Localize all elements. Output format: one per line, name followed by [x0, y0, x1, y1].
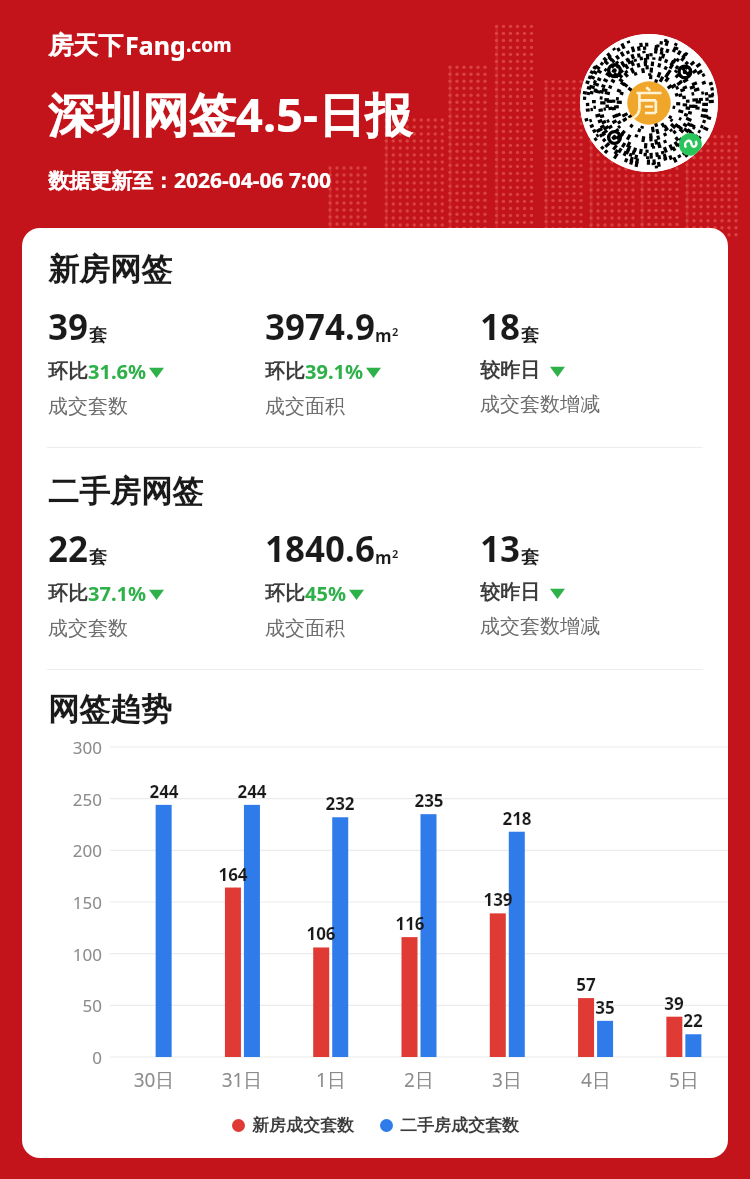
button[interactable]: 新房成交套数 [232, 1115, 354, 1136]
staticText: 2 [392, 324, 399, 339]
staticText: 39.1% [305, 358, 363, 385]
staticText: 35 [583, 996, 627, 1019]
staticText: 235 [407, 789, 451, 812]
staticText: 较昨日 [480, 358, 540, 383]
staticText: m [375, 324, 392, 347]
staticText: 套 [89, 324, 107, 347]
staticText: 较昨日 [480, 580, 540, 605]
staticText: 套 [89, 546, 107, 569]
staticText: 30日 [122, 1067, 186, 1093]
button[interactable]: 13 [480, 525, 600, 639]
staticText: 18 [480, 303, 521, 351]
staticText: 232 [318, 792, 362, 815]
button[interactable]: 3974.9 [265, 303, 399, 419]
staticText: 31日 [210, 1067, 274, 1093]
staticText: 房天下 [48, 30, 123, 61]
staticText: Fang [125, 28, 186, 62]
staticText: .com [186, 32, 232, 58]
staticText: 新房网签 [48, 250, 172, 289]
button[interactable]: 1840.6 [265, 525, 399, 641]
staticText: 45% [305, 580, 346, 607]
staticText: 1840.6 [265, 525, 375, 573]
staticText: 5日 [652, 1067, 716, 1093]
staticText: 套 [521, 324, 539, 347]
staticText: 100 [58, 943, 102, 966]
staticText: 31.6% [88, 358, 146, 385]
staticText: 数据更新至：2026-04-06 7:00 [48, 166, 331, 195]
staticText: 150 [58, 891, 102, 914]
staticText: 13 [480, 525, 521, 573]
staticText: 成交套数 [48, 394, 128, 419]
staticText: 新房成交套数 [252, 1115, 354, 1136]
staticText: 3日 [475, 1067, 539, 1093]
button[interactable]: 22 [48, 525, 164, 641]
staticText: 3974.9 [265, 303, 375, 351]
button[interactable]: 二手房网签 [48, 472, 203, 511]
staticText: 环比 [48, 581, 88, 606]
staticText: 218 [495, 807, 539, 830]
staticText: 成交套数增减 [480, 614, 600, 639]
button[interactable]: 39 [48, 303, 164, 419]
staticText: 成交面积 [265, 394, 345, 419]
staticText: 深圳网签4.5-日报 [48, 82, 413, 146]
staticText: 二手房成交套数 [400, 1115, 519, 1136]
staticText: 2 [392, 546, 399, 561]
staticText: 22 [48, 525, 89, 573]
button[interactable]: 网签趋势 [48, 690, 172, 729]
button[interactable]: 房天下 [48, 28, 232, 62]
staticText: 139 [476, 888, 520, 911]
staticText: 成交套数 [48, 616, 128, 641]
staticText: 57 [564, 973, 608, 996]
staticText: 4日 [564, 1067, 628, 1093]
staticText: 套 [521, 546, 539, 569]
staticText: 成交面积 [265, 616, 345, 641]
staticText: 244 [230, 780, 274, 803]
staticText: m [375, 546, 392, 569]
button[interactable]: 扫码打开房天下小程序 [580, 34, 718, 172]
staticText: 250 [58, 788, 102, 811]
staticText: 50 [58, 994, 102, 1017]
staticText: 22 [671, 1009, 715, 1032]
button[interactable]: 新房网签 [48, 250, 172, 289]
button[interactable]: 18 [480, 303, 600, 417]
staticText: 1日 [299, 1067, 363, 1093]
staticText: 网签趋势 [48, 690, 172, 729]
staticText: 244 [142, 780, 186, 803]
staticText: 200 [58, 839, 102, 862]
staticText: 环比 [48, 359, 88, 384]
staticText: 37.1% [88, 580, 146, 607]
staticText: 39 [652, 992, 696, 1015]
staticText: 164 [211, 863, 255, 886]
staticText: 39 [48, 303, 89, 351]
staticText: 环比 [265, 581, 305, 606]
staticText: 成交套数增减 [480, 392, 600, 417]
staticText: 环比 [265, 359, 305, 384]
staticText: 116 [388, 912, 432, 935]
staticText: 300 [58, 736, 102, 759]
staticText: 2日 [387, 1067, 451, 1093]
staticText: 二手房网签 [48, 472, 203, 511]
staticText: 0 [58, 1046, 102, 1069]
button[interactable]: 二手房成交套数 [380, 1115, 519, 1136]
staticText: 106 [299, 922, 343, 945]
